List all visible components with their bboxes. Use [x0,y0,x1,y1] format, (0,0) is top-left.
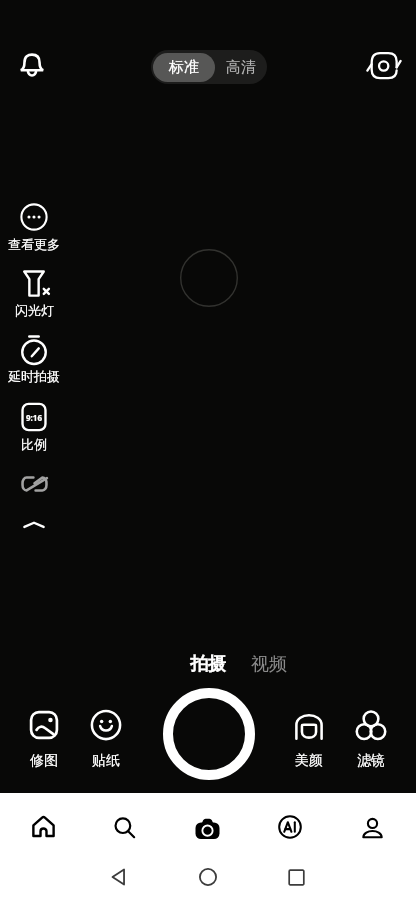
staticText: 比例 [21,436,47,452]
button[interactable]: 标准 [153,53,215,82]
staticText: 拍摄 [190,653,226,676]
button[interactable]: Home [188,857,228,897]
button[interactable]: Shutter [163,688,255,780]
staticText: 查看更多 [8,236,60,252]
button[interactable]: 高清 [215,53,267,82]
button[interactable]: Profile [346,802,398,854]
button[interactable]: 9:16 [4,403,64,452]
staticText: 高清 [226,58,256,77]
button[interactable]: 美颜 [279,710,339,770]
button[interactable]: 延时拍摄 [4,335,64,384]
button[interactable]: 查看更多 [4,203,64,252]
button[interactable]: Back [99,857,139,897]
staticText: 9:16 [26,412,42,423]
button[interactable]: 拍摄 [190,653,226,676]
button[interactable]: 视频 [251,653,287,676]
button[interactable]: Switch camera [364,45,404,85]
staticText: 修图 [30,752,58,770]
button[interactable]: 贴纸 [76,710,136,770]
staticText: 标准 [169,58,199,77]
staticText: 滤镜 [357,752,385,770]
staticText: 视频 [251,653,287,676]
button[interactable]: Notifications [12,45,52,85]
staticText: 美颜 [295,752,323,770]
button[interactable]: 滤镜 [341,710,401,770]
button[interactable]: AI [264,801,316,853]
button[interactable]: Search [98,801,150,853]
staticText: 贴纸 [92,752,120,770]
staticText: 闪光灯 [15,302,54,318]
button[interactable]: Expand [14,505,54,545]
button[interactable]: Auto [14,464,54,504]
button[interactable]: Home [17,801,69,853]
button[interactable]: Recents [276,857,316,897]
button[interactable]: 闪光灯 [4,269,64,318]
button[interactable]: Camera [181,802,233,854]
button[interactable]: 修图 [14,710,74,770]
staticText: 延时拍摄 [8,368,60,384]
